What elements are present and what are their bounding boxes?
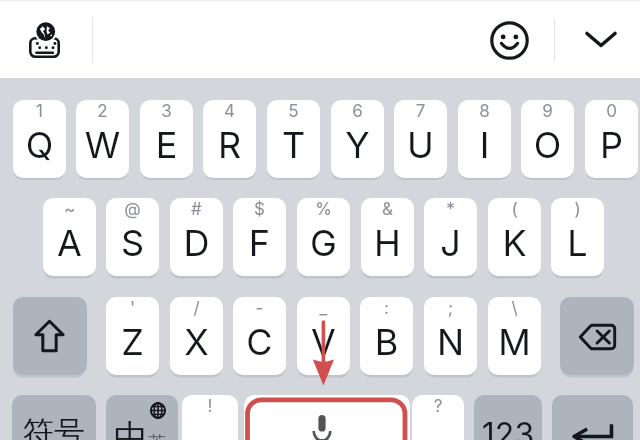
button[interactable]: Enter (552, 395, 633, 440)
staticText: / (170, 298, 223, 319)
button[interactable]: Hide keyboard (576, 14, 626, 64)
staticText: W (76, 123, 129, 167)
button[interactable]: 1 (13, 100, 66, 178)
button[interactable]: 2 (76, 100, 129, 178)
staticText: ! (182, 396, 238, 417)
staticText: ? (412, 396, 464, 417)
button[interactable]: Backspace (560, 297, 634, 375)
staticText: H (361, 221, 414, 265)
staticText: \ (488, 298, 541, 319)
button[interactable]: - (233, 297, 286, 375)
staticText: 7 (394, 101, 447, 122)
staticText: S (106, 221, 159, 265)
button[interactable]: Switch Chinese English (106, 395, 178, 440)
staticText: I (458, 123, 511, 167)
button[interactable]: # (170, 198, 223, 276)
staticText: $ (233, 199, 286, 220)
staticText: T (267, 123, 320, 167)
staticText: ) (551, 199, 604, 220)
button[interactable]: 8 (458, 100, 511, 178)
staticText: ( (488, 199, 541, 220)
staticText: Q (13, 123, 66, 167)
staticText: V (297, 320, 350, 364)
button[interactable]: \ (488, 297, 541, 375)
staticText: ; (424, 298, 477, 319)
staticText: K (488, 221, 541, 265)
button[interactable]: $ (233, 198, 286, 276)
button[interactable]: 7 (394, 100, 447, 178)
staticText: @ (106, 199, 159, 220)
staticText: 中 (114, 416, 148, 440)
staticText: E (140, 123, 193, 167)
button[interactable]: Emoji (484, 15, 534, 65)
button[interactable]: Numbers (474, 395, 542, 440)
staticText: 1 (13, 101, 66, 122)
staticText: 0 (585, 101, 638, 122)
staticText: N (424, 320, 477, 364)
button[interactable]: Change input language (17, 10, 71, 68)
button[interactable]: 4 (203, 100, 256, 178)
staticText: L (551, 221, 604, 265)
button[interactable]: % (297, 198, 350, 276)
button[interactable]: ) (551, 198, 604, 276)
button[interactable]: ! (182, 395, 238, 440)
staticText: G (297, 221, 350, 265)
staticText: 4 (203, 101, 256, 122)
staticText: U (394, 123, 447, 167)
staticText: P (585, 123, 638, 167)
staticText: O (521, 123, 574, 167)
staticText: R (203, 123, 256, 167)
staticText: - (233, 298, 286, 319)
staticText: J (424, 221, 477, 265)
staticText: % (297, 199, 350, 220)
button[interactable]: Space and voice input (244, 395, 410, 440)
button[interactable]: & (361, 198, 414, 276)
staticText: ' (106, 298, 159, 319)
staticText: B (360, 320, 413, 364)
button[interactable]: * (424, 198, 477, 276)
button[interactable]: _ (297, 297, 350, 375)
button[interactable]: ' (106, 297, 159, 375)
button[interactable]: 0 (585, 100, 638, 178)
staticText: 3 (140, 101, 193, 122)
staticText: & (361, 199, 414, 220)
staticText: M (488, 320, 541, 364)
staticText: : (360, 298, 413, 319)
staticText: _ (297, 298, 350, 319)
button[interactable]: / (170, 297, 223, 375)
button[interactable]: Shift (13, 297, 87, 375)
button[interactable]: : (360, 297, 413, 375)
staticText: 8 (458, 101, 511, 122)
staticText: F (233, 221, 286, 265)
button[interactable]: ; (424, 297, 477, 375)
staticText: 9 (521, 101, 574, 122)
staticText: C (233, 320, 286, 364)
button[interactable]: 6 (331, 100, 384, 178)
staticText: ~ (43, 199, 96, 220)
button[interactable]: ~ (43, 198, 96, 276)
staticText: 英 (148, 432, 166, 440)
button[interactable]: @ (106, 198, 159, 276)
button[interactable]: 5 (267, 100, 320, 178)
staticText: 5 (267, 101, 320, 122)
staticText: * (424, 199, 477, 220)
staticText: 6 (331, 101, 384, 122)
staticText: 2 (76, 101, 129, 122)
button[interactable]: ( (488, 198, 541, 276)
button[interactable]: Symbols (12, 395, 96, 440)
staticText: 符号 (12, 413, 96, 440)
staticText: Y (331, 123, 384, 167)
button[interactable]: 9 (521, 100, 574, 178)
button[interactable]: ? (412, 395, 464, 440)
staticText: A (43, 221, 96, 265)
button[interactable]: 3 (140, 100, 193, 178)
staticText: X (170, 320, 223, 364)
staticText: # (170, 199, 223, 220)
staticText: 123 (474, 415, 542, 440)
staticText: Z (106, 320, 159, 364)
staticText: D (170, 221, 223, 265)
